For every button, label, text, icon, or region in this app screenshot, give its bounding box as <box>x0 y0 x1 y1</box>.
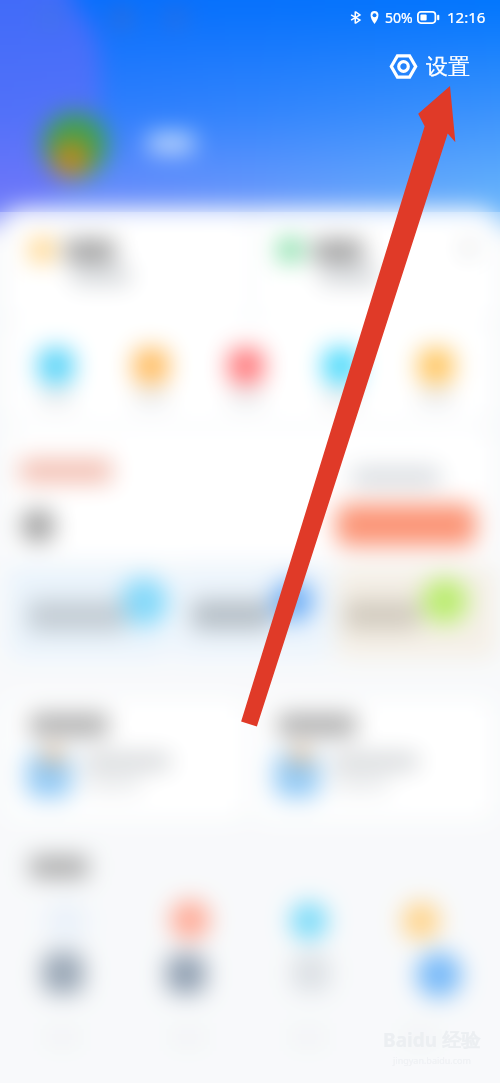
button[interactable]: 我的订单 <box>8 214 248 320</box>
button[interactable]: 收付款 <box>119 340 183 416</box>
button[interactable]: 服务二 <box>172 566 332 658</box>
button[interactable]: 应用一 <box>30 892 106 1042</box>
button[interactable]: 设置 <box>386 48 473 85</box>
staticText: Baidu 经验 <box>383 1027 480 1053</box>
button[interactable]: 应用三 <box>278 892 354 1042</box>
button[interactable]: 我的消息 <box>256 214 496 320</box>
button[interactable]: 应用二 <box>156 892 232 1042</box>
staticText: 设置 <box>426 53 470 81</box>
other: 设置 <box>389 52 418 81</box>
button[interactable]: 会员 <box>404 340 468 416</box>
button[interactable]: 应用四 <box>392 892 468 1042</box>
staticText: 12:16 <box>447 7 486 27</box>
button[interactable]: 推荐一 <box>8 700 244 818</box>
button[interactable]: 服务一 <box>8 566 168 658</box>
button[interactable]: 立即开通 <box>336 504 476 546</box>
button[interactable]: 服务三 <box>336 566 496 658</box>
staticText: 50% <box>385 8 413 27</box>
button[interactable]: 推荐二 <box>256 700 492 818</box>
button[interactable]: 出行 <box>309 340 373 416</box>
button[interactable]: 卡包 <box>214 340 278 416</box>
button[interactable]: 扫一扫 <box>24 340 88 416</box>
